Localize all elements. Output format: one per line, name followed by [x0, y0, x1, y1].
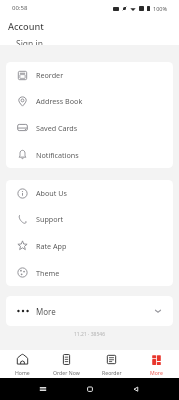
staticText: More — [36, 306, 56, 317]
staticText: Order Now — [53, 369, 80, 376]
button[interactable]: Support — [6, 206, 173, 232]
button[interactable]: Rate App — [6, 232, 173, 259]
other: Home — [86, 385, 94, 393]
staticText: Reorder — [102, 369, 122, 376]
staticText: 100% — [153, 5, 168, 12]
other: Recents — [39, 385, 47, 393]
staticText: Home — [15, 369, 30, 376]
button[interactable]: Saved Cards — [6, 114, 173, 141]
button[interactable]: Notifications — [6, 141, 173, 168]
staticText: Theme — [36, 268, 60, 278]
staticText: Support — [36, 214, 64, 224]
button[interactable]: About Us — [6, 180, 173, 206]
button[interactable]: Reorder — [89, 353, 134, 376]
staticText: Sign in — [16, 38, 43, 45]
staticText: Notifications — [36, 150, 79, 160]
button[interactable]: More — [6, 296, 173, 326]
other: Back — [132, 385, 140, 393]
staticText: 11.21 · 38546 — [0, 331, 179, 338]
button[interactable]: Theme — [6, 259, 173, 286]
button[interactable]: More — [134, 353, 179, 376]
staticText: More — [150, 369, 163, 376]
staticText: Reorder — [36, 70, 64, 80]
staticText: About Us — [36, 188, 67, 198]
button[interactable]: Order Now — [44, 353, 89, 376]
button[interactable]: Address Book — [6, 88, 173, 114]
staticText: Address Book — [36, 96, 83, 106]
staticText: 00:58 — [12, 4, 28, 12]
staticText: Account — [8, 20, 44, 33]
button[interactable]: Reorder — [6, 62, 173, 88]
staticText: Saved Cards — [36, 123, 78, 133]
staticText: Rate App — [36, 241, 67, 251]
button[interactable]: Home — [0, 353, 44, 376]
